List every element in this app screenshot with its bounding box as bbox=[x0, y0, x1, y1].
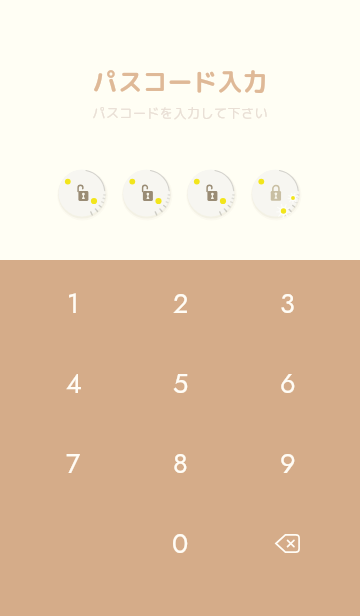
button[interactable]: 9 bbox=[234, 423, 341, 503]
button[interactable]: 5 bbox=[127, 343, 234, 423]
staticText: 8 bbox=[173, 444, 188, 483]
staticText: 4 bbox=[66, 364, 82, 403]
button[interactable]: 0 bbox=[127, 503, 234, 584]
button[interactable]: 4 bbox=[20, 343, 127, 423]
staticText: 0 bbox=[172, 524, 189, 563]
staticText: 5 bbox=[173, 364, 189, 403]
button[interactable]: 1 bbox=[20, 263, 127, 343]
staticText: 7 bbox=[66, 444, 81, 483]
staticText: 1 bbox=[67, 284, 80, 323]
button[interactable]: 8 bbox=[127, 423, 234, 503]
staticText: 2 bbox=[173, 284, 189, 323]
staticText: パスコードを入力して下さい bbox=[92, 103, 268, 122]
button[interactable]: Backspace bbox=[234, 503, 360, 584]
staticText: 3 bbox=[280, 284, 295, 323]
button[interactable]: 3 bbox=[234, 263, 341, 343]
staticText: パスコード入力 bbox=[92, 64, 268, 99]
button[interactable]: 7 bbox=[20, 423, 127, 503]
staticText: 6 bbox=[280, 364, 296, 403]
button[interactable]: 6 bbox=[234, 343, 341, 423]
staticText: 9 bbox=[280, 444, 296, 483]
button[interactable]: 2 bbox=[127, 263, 234, 343]
